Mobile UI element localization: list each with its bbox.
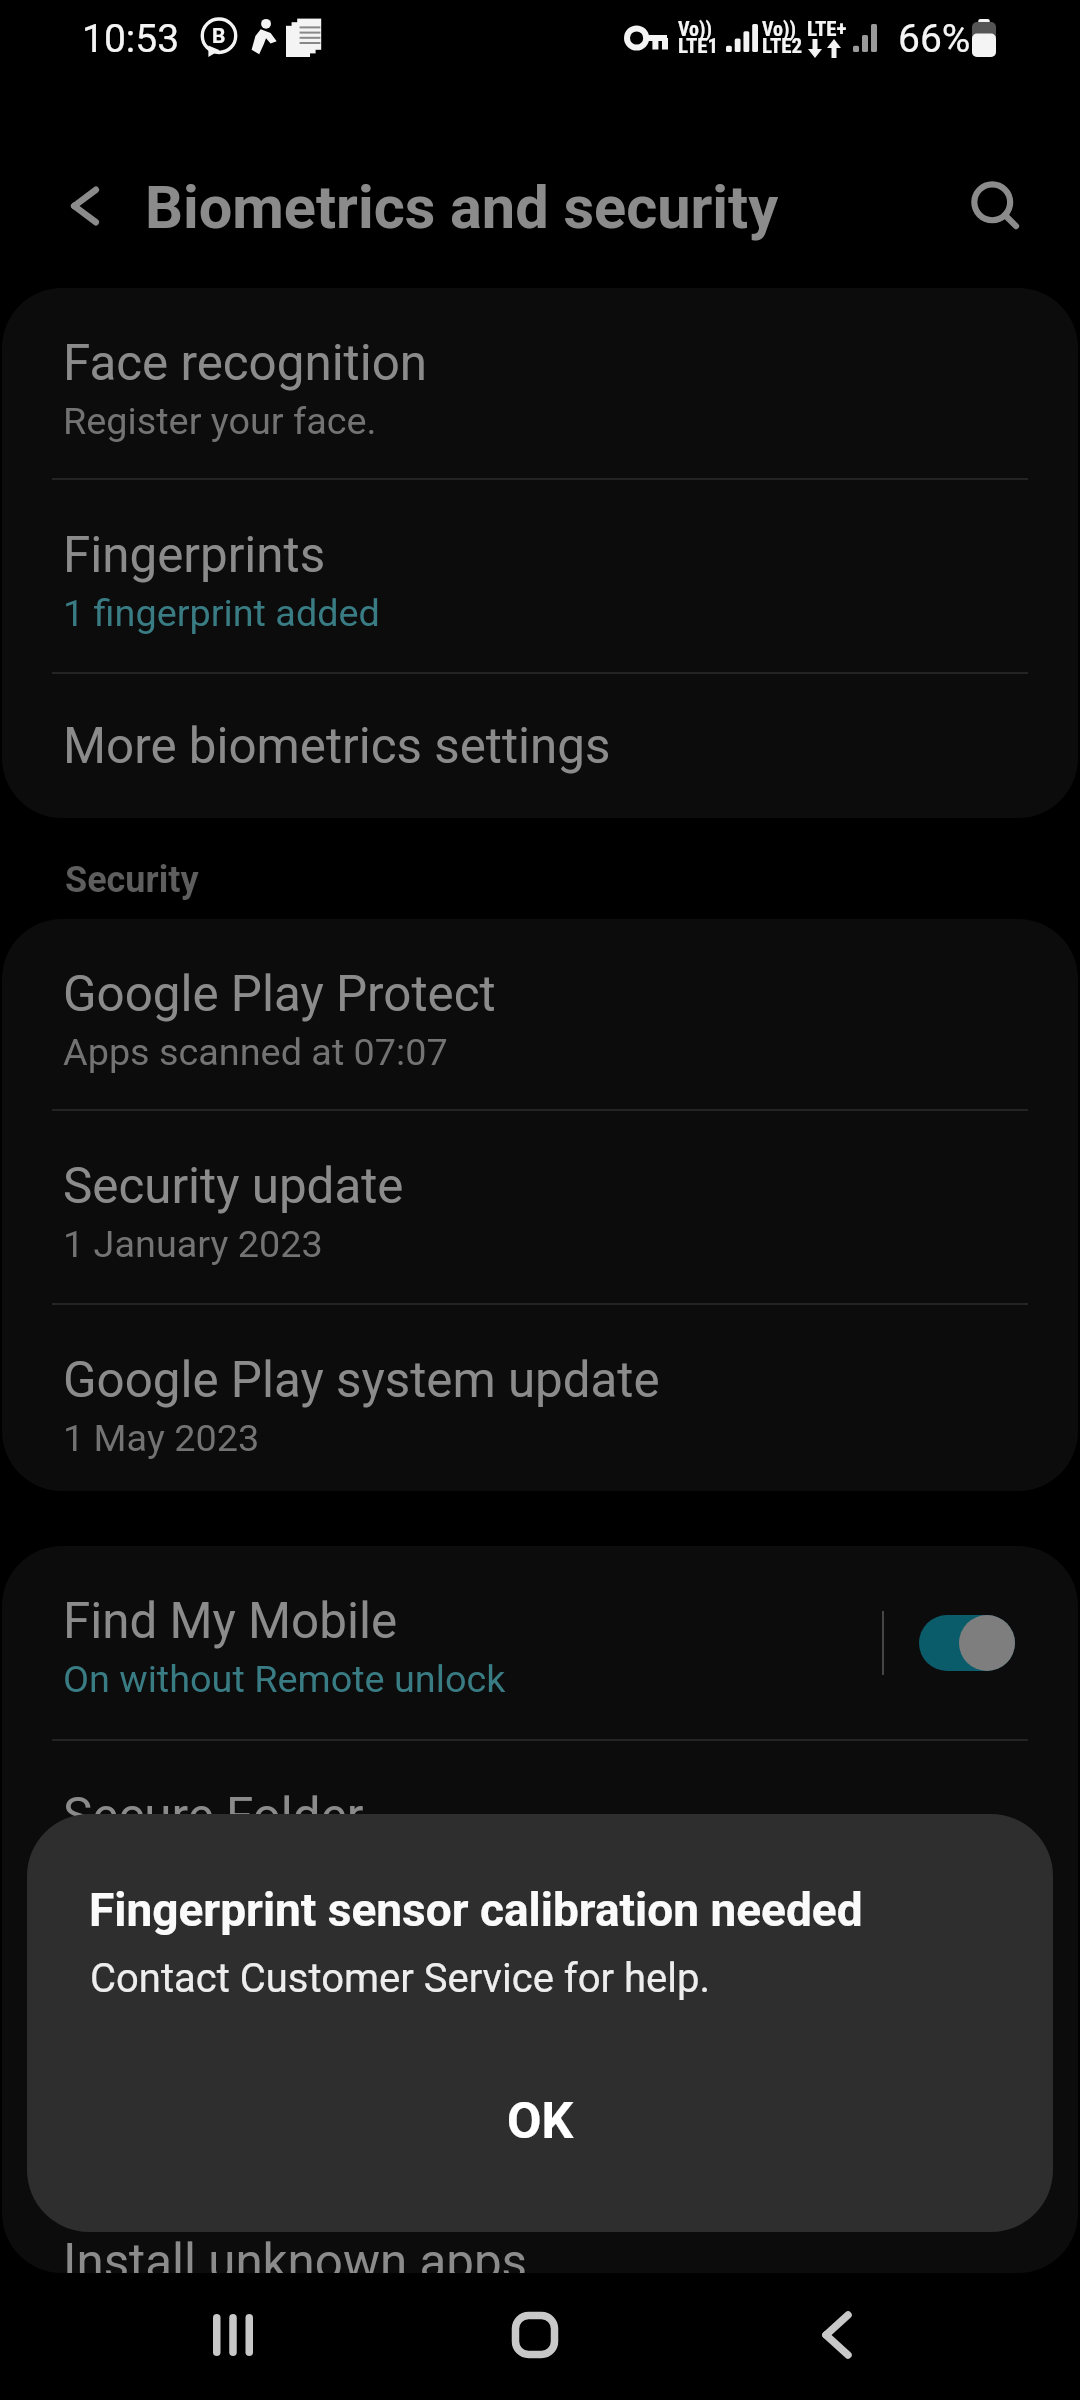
button[interactable]: Search [948, 160, 1048, 260]
staticText: Google Play Protect [63, 965, 496, 1023]
staticText: Face recognition [63, 334, 428, 392]
staticText: Security [65, 859, 199, 901]
staticText: 10:53 [82, 16, 180, 62]
button[interactable]: Face recognition [2, 288, 1078, 478]
staticText: Apps scanned at 07:07 [63, 1030, 448, 1074]
staticText: 1 January 2023 [63, 1222, 323, 1266]
staticText: LTE1 [678, 34, 719, 59]
staticText: 1 fingerprint added [63, 591, 380, 635]
button[interactable]: Install unknown apps [2, 2187, 1078, 2273]
staticText: 1 May 2023 [63, 1416, 260, 1460]
staticText: More biometrics settings [63, 717, 611, 775]
staticText: Contact Customer Service for help. [90, 1955, 710, 2002]
staticText: LTE+ [807, 17, 847, 42]
staticText: Secure Folder [63, 1787, 364, 1845]
button[interactable]: Find My Mobile [2, 1546, 1078, 1739]
staticText: Vo)) [678, 17, 713, 40]
staticText: LTE2 [762, 34, 803, 59]
staticText: Keep your personal files safe [63, 1852, 547, 1896]
button[interactable]: Home [470, 2275, 600, 2395]
staticText: Register your face. [63, 399, 377, 443]
button[interactable]: Google Play system update [2, 1305, 1078, 1491]
staticText: Biometrics and security [145, 173, 779, 243]
staticText: Fingerprint sensor calibration needed [89, 1883, 863, 1937]
staticText: Google Play system update [63, 1351, 660, 1409]
button[interactable]: Secure Folder [2, 1741, 1078, 1930]
staticText: OK [507, 2092, 574, 2151]
button[interactable]: Fingerprints [2, 480, 1078, 672]
staticText: Install unknown apps [63, 2233, 528, 2273]
staticText: On without Remote unlock [63, 1657, 506, 1701]
staticText: B [212, 24, 226, 49]
button[interactable]: More biometrics settings [2, 674, 1078, 818]
button[interactable]: Secure Wi-Fi [2, 1932, 1078, 2185]
button[interactable]: OK [430, 2071, 650, 2171]
staticText: Fingerprints [63, 526, 326, 584]
button[interactable]: Navigate up [35, 156, 135, 256]
button[interactable]: Recent apps [168, 2275, 298, 2395]
staticText: 66% [898, 16, 971, 62]
staticText: Secure Wi-Fi [63, 1978, 335, 2036]
staticText: Security update [63, 1157, 404, 1215]
button[interactable]: Security update [2, 1111, 1078, 1303]
button[interactable]: Google Play Protect [2, 919, 1078, 1109]
button[interactable]: Back [772, 2275, 902, 2395]
staticText: Find My Mobile [63, 1592, 398, 1650]
staticText: Vo)) [762, 17, 797, 40]
button[interactable]: Find My Mobile on [919, 1615, 1015, 1671]
